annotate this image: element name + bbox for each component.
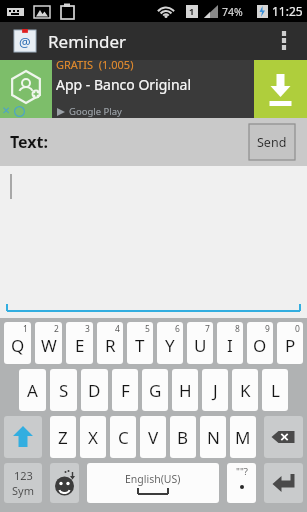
staticText: 6 <box>175 323 180 335</box>
staticText: C <box>118 426 129 449</box>
button[interactable]: U <box>187 322 213 364</box>
button[interactable]: L <box>262 369 288 411</box>
staticText: M <box>235 426 251 449</box>
button[interactable]: Shift <box>4 416 42 458</box>
button[interactable]: Space <box>87 463 219 503</box>
staticText: I <box>227 334 233 357</box>
button[interactable]: T <box>127 322 153 364</box>
staticText: 1 <box>23 323 28 335</box>
staticText: App - Banco Original <box>56 75 192 94</box>
staticText: Y <box>165 334 175 357</box>
staticText: W <box>41 334 57 357</box>
staticText: E <box>75 334 85 357</box>
staticText: N <box>207 426 220 449</box>
staticText: A <box>27 379 38 402</box>
button[interactable]: ✕ <box>0 60 307 118</box>
button[interactable]: Send <box>249 124 295 160</box>
staticText: 8 <box>235 323 240 335</box>
button[interactable]: J <box>202 369 228 411</box>
staticText: 0 <box>295 323 300 335</box>
staticText: 4 <box>115 323 120 335</box>
button[interactable]: H <box>172 369 198 411</box>
staticText: 9 <box>265 323 270 335</box>
staticText: X <box>88 426 98 449</box>
button[interactable]: V <box>140 416 166 458</box>
staticText: G <box>149 379 162 402</box>
button[interactable]: App icon <box>13 29 37 53</box>
staticText: J <box>213 379 218 402</box>
staticText: Reminder <box>48 30 127 53</box>
button[interactable]: Q <box>4 322 31 364</box>
staticText: O <box>253 334 267 357</box>
button[interactable]: M <box>230 416 256 458</box>
staticText: Send <box>257 134 287 151</box>
staticText: D <box>88 379 101 402</box>
staticText: 74% <box>222 5 243 19</box>
staticText: @ <box>19 33 31 51</box>
button[interactable]: R <box>97 322 123 364</box>
staticText: U <box>194 334 207 357</box>
button[interactable]: P <box>277 322 303 364</box>
staticText: L <box>271 379 280 402</box>
staticText: R <box>105 334 116 357</box>
staticText: F <box>121 379 130 402</box>
button[interactable]: K <box>232 369 258 411</box>
button[interactable]: Enter <box>264 463 303 503</box>
staticText: GRATIS (1.005) <box>56 57 134 72</box>
staticText: B <box>177 426 189 449</box>
button[interactable]: 123 <box>4 463 42 503</box>
staticText: ""? <box>236 465 248 478</box>
button[interactable]: W <box>35 322 62 364</box>
staticText: S <box>59 379 69 402</box>
button[interactable]: F <box>112 369 138 411</box>
staticText: 5 <box>145 323 150 335</box>
button[interactable]: X <box>80 416 106 458</box>
button[interactable]: A <box>19 369 46 411</box>
button[interactable]: Z <box>50 416 76 458</box>
staticText: T <box>135 334 145 357</box>
staticText: English(US) <box>125 472 181 486</box>
button[interactable]: B <box>170 416 196 458</box>
button[interactable]: C <box>110 416 136 458</box>
staticText: Text: <box>10 131 49 153</box>
button[interactable]: G <box>142 369 168 411</box>
button[interactable]: I <box>217 322 243 364</box>
staticText: Google Play <box>69 105 122 118</box>
button[interactable]: O <box>247 322 273 364</box>
staticText: ✕ <box>2 105 11 117</box>
button[interactable]: D <box>81 369 108 411</box>
staticText: 3 <box>85 323 90 335</box>
button[interactable]: Y <box>157 322 183 364</box>
staticText: H <box>179 379 192 402</box>
button[interactable]: E <box>66 322 93 364</box>
staticText: 1 <box>189 5 195 17</box>
staticText: 2 <box>54 323 59 335</box>
staticText: 11:25 <box>272 3 303 19</box>
staticText: 123 <box>14 468 33 483</box>
staticText: 7 <box>205 323 210 335</box>
button[interactable]: Install <box>254 60 307 118</box>
button[interactable]: Backspace <box>264 416 303 458</box>
button[interactable]: Emoji <box>50 463 79 503</box>
button[interactable]: S <box>50 369 77 411</box>
button[interactable]: N <box>200 416 226 458</box>
button[interactable]: More options <box>267 24 301 58</box>
staticText: V <box>148 426 159 449</box>
button[interactable]: ""? <box>227 463 256 503</box>
staticText: K <box>240 379 251 402</box>
staticText: Z <box>58 426 68 449</box>
staticText: P <box>285 334 296 357</box>
staticText: Q <box>11 334 25 357</box>
staticText: Sym <box>12 483 34 498</box>
